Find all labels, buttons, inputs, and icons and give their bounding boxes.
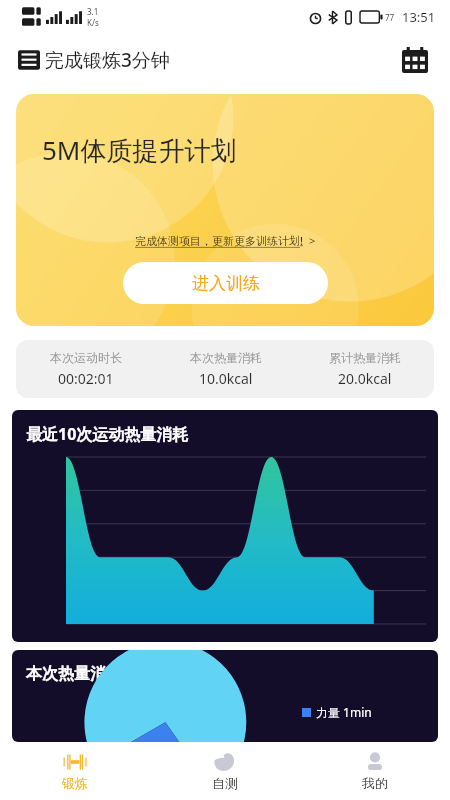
button[interactable]: 进入训练 [123, 262, 328, 304]
staticText: > [309, 233, 316, 248]
other: Self test [213, 752, 237, 772]
other: Profile [364, 752, 386, 772]
staticText: 3.1 [87, 6, 99, 17]
staticText: 最近10次运动热量消耗 [26, 423, 189, 445]
button[interactable]: 完成锻炼3分钟 [18, 47, 170, 73]
button[interactable]: 本次热量消耗(kcal/次) [12, 650, 438, 742]
other: Workout [62, 752, 88, 772]
button[interactable]: 5M体质提升计划 [16, 94, 434, 326]
staticText: 完成锻炼3分钟 [45, 47, 170, 73]
button[interactable]: Calendar [394, 39, 436, 81]
staticText: 00:02:01 [58, 369, 114, 388]
button[interactable]: 本次运动时长 [16, 340, 434, 398]
button[interactable]: 最近10次运动热量消耗 [12, 410, 438, 642]
button[interactable]: 完成体测项目，更新更多训练计划! [129, 230, 322, 251]
staticText: 完成体测项目，更新更多训练计划! [135, 233, 304, 248]
staticText: 5M体质提升计划 [42, 132, 237, 168]
staticText: 本次运动时长 [50, 350, 122, 365]
staticText: 自测 [212, 775, 238, 791]
button[interactable]: Profile [300, 742, 450, 800]
staticText: 13:51 [402, 8, 436, 26]
staticText: K/s [87, 17, 99, 28]
staticText: 本次热量消耗(kcal/次) [26, 662, 189, 684]
staticText: 锻炼 [62, 775, 88, 791]
staticText: 进入训练 [192, 273, 260, 294]
button[interactable]: Workout [0, 742, 150, 800]
staticText: 本次热量消耗 [190, 350, 262, 365]
staticText: 力量 1min [316, 704, 372, 720]
staticText: 我的 [362, 775, 388, 791]
staticText: 10.0kcal [199, 369, 253, 388]
staticText: 77 [385, 12, 395, 23]
staticText: 20.0kcal [338, 369, 392, 388]
staticText: 累计热量消耗 [329, 350, 401, 365]
button[interactable]: Self test [150, 742, 300, 800]
